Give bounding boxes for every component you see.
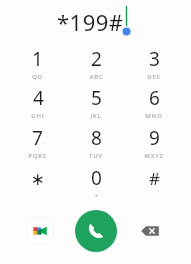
staticText: *199# [57,7,124,37]
staticText: GHI [31,112,45,120]
staticText: 9 [149,125,160,151]
staticText: ABC [89,73,104,81]
button[interactable]: 7 [8,122,67,162]
staticText: # [149,167,160,190]
button[interactable]: Backspace [135,216,165,246]
staticText: PQRS [28,152,47,160]
button[interactable]: ∗ [8,162,67,202]
staticText: 8 [91,125,102,151]
button[interactable]: 4 [8,83,67,122]
button[interactable]: 9 [125,122,183,162]
button[interactable]: 3 [125,44,183,83]
staticText: 0 [91,165,102,191]
staticText: DEF [147,73,161,81]
staticText: 6 [149,85,160,111]
button[interactable]: 8 [67,122,125,162]
button[interactable]: 2 [67,44,125,83]
button[interactable]: Video call with Google Meet [26,217,54,245]
staticText: 7 [32,125,43,151]
button[interactable]: # [125,162,183,202]
button[interactable]: 6 [125,83,183,122]
staticText: JKL [90,112,102,120]
staticText: 4 [33,85,44,111]
button[interactable]: 0 [67,162,125,202]
staticText: 3 [149,46,160,72]
staticText: WXYZ [144,152,164,160]
button[interactable]: 5 [67,83,125,122]
button[interactable]: 1 [8,44,67,83]
button[interactable]: Call [75,210,117,252]
staticText: TUV [89,152,103,160]
staticText: 1 [32,46,43,72]
staticText: ∗ [30,169,45,189]
staticText: + [94,192,99,200]
staticText: QD [32,73,43,81]
staticText: 5 [91,85,102,111]
staticText: 2 [91,46,102,72]
staticText: MNO [145,112,163,120]
